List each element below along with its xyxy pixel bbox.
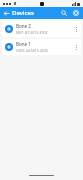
button[interactable]: Search [58,7,70,19]
button[interactable]: Bone 1 [2,39,81,55]
button[interactable]: More options [70,7,82,19]
staticText: Bone 1 [16,41,31,47]
button[interactable]: Back [0,7,12,19]
staticText: Devices [12,9,58,17]
button[interactable]: Device options [71,39,81,55]
button[interactable]: Device options [71,21,81,37]
staticText: 33D5-04-5015-4335 [16,48,48,53]
button[interactable]: Bone 2 [2,21,81,37]
staticText: 00F1-B7-5015-8102 [16,30,48,35]
staticText: Bone 2 [16,23,31,29]
